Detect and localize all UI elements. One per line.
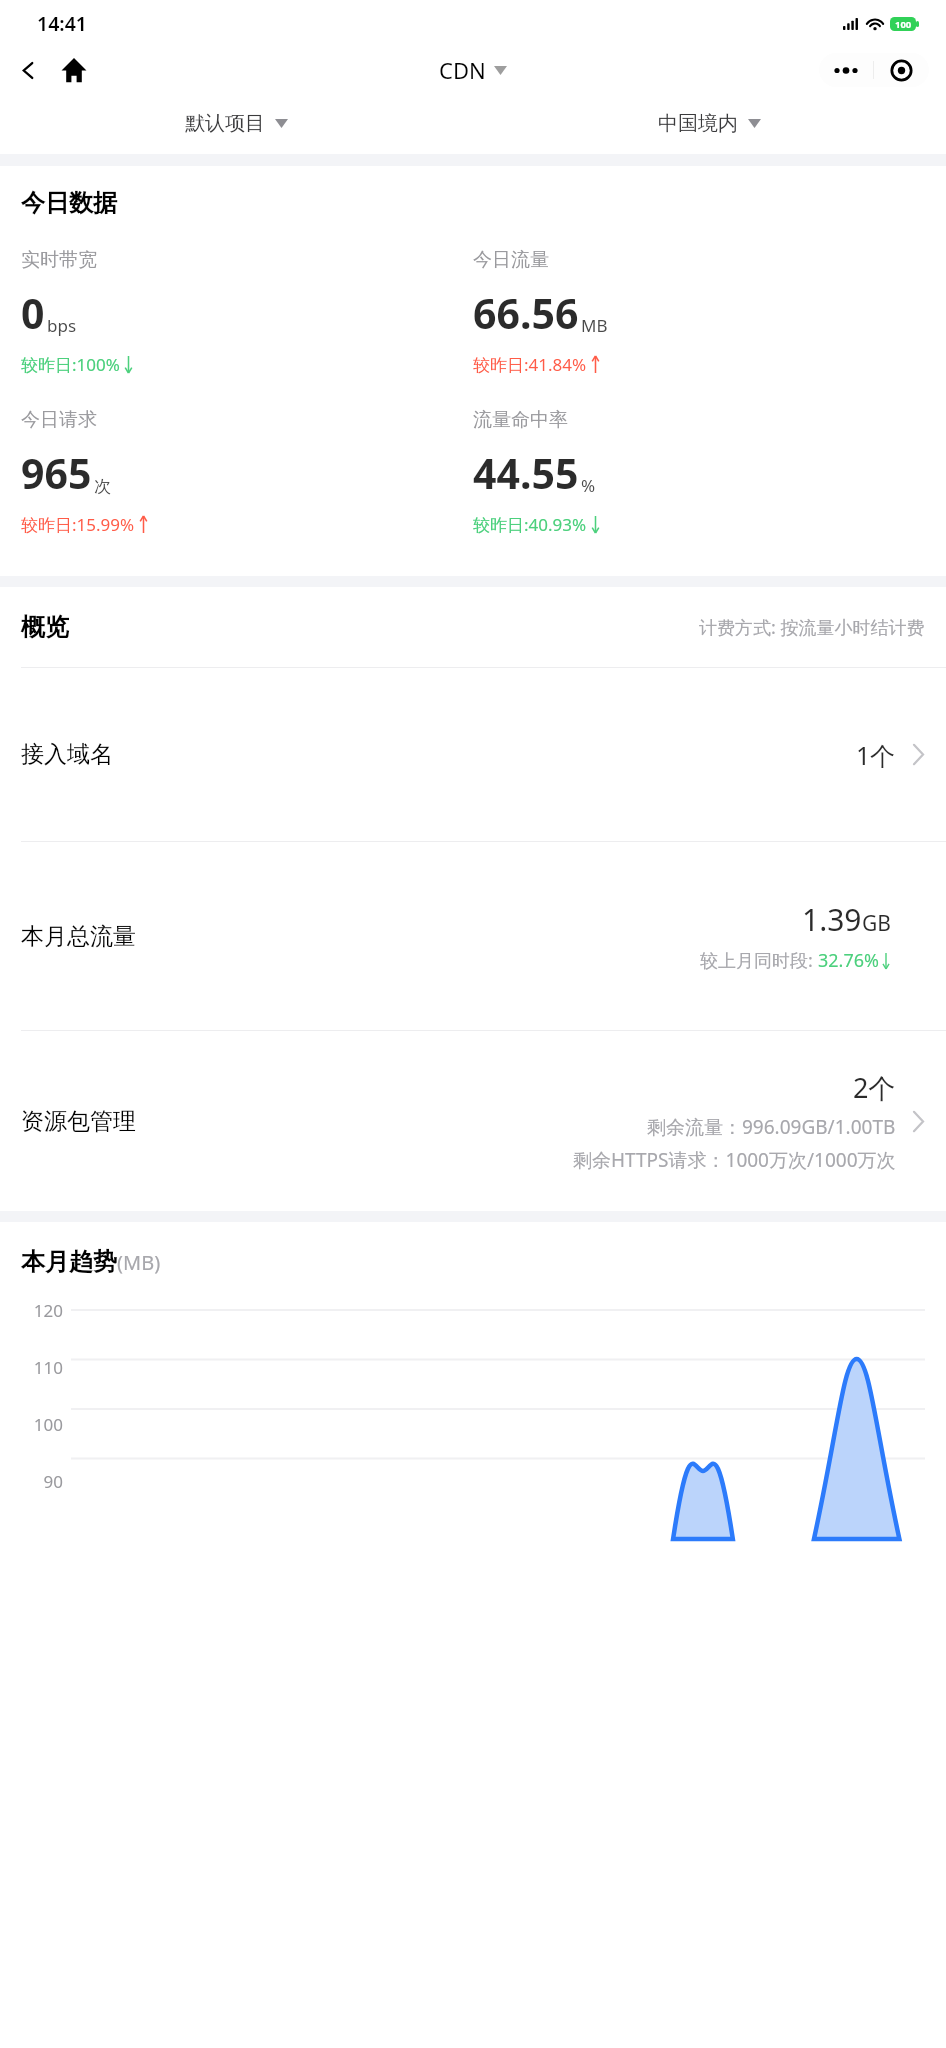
staticText: 120	[33, 1299, 63, 1322]
staticText: %	[581, 474, 596, 497]
staticText: 较昨日:100%	[21, 353, 120, 376]
staticText: 66.56	[473, 285, 579, 341]
staticText: 接入域名	[21, 740, 113, 769]
staticText: 本月趋势	[21, 1247, 117, 1277]
button[interactable]: Home	[52, 48, 96, 92]
button[interactable]: 本月总流量	[0, 842, 946, 1030]
staticText: 较上月同时段:	[700, 948, 818, 973]
staticText: 今日数据	[21, 188, 117, 218]
staticText: MB	[581, 314, 608, 337]
button[interactable]: Back	[8, 50, 48, 90]
staticText: 2个	[853, 1069, 896, 1106]
staticText: 默认项目	[185, 111, 265, 136]
staticText: 32.76%	[818, 948, 879, 973]
staticText: CDN	[439, 55, 486, 85]
button[interactable]: Close	[874, 53, 929, 87]
staticText: 110	[33, 1356, 63, 1379]
button[interactable]: More	[819, 53, 873, 87]
staticText: 较昨日:41.84%	[473, 353, 587, 376]
button[interactable]: 默认项目	[0, 92, 473, 154]
staticText: 流量命中率	[473, 408, 568, 432]
staticText: 1.39	[802, 899, 862, 940]
staticText: 100	[895, 18, 912, 31]
staticText: 中国境内	[658, 111, 738, 136]
staticText: 资源包管理	[21, 1107, 136, 1136]
staticText: GB	[862, 909, 891, 938]
staticText: 44.55	[473, 445, 579, 501]
button[interactable]: 中国境内	[473, 92, 946, 154]
staticText: 实时带宽	[21, 248, 97, 272]
staticText: 较昨日:40.93%	[473, 513, 587, 536]
staticText: 次	[94, 476, 111, 497]
staticText: 剩余流量：996.09GB/1.00TB	[647, 1114, 896, 1140]
staticText: 今日请求	[21, 408, 97, 432]
staticText: (MB)	[117, 1249, 161, 1276]
staticText: 概览	[21, 612, 69, 642]
staticText: 较昨日:15.99%	[21, 513, 135, 536]
staticText: 计费方式: 按流量小时结计费	[699, 615, 925, 640]
staticText: 14:41	[37, 10, 87, 37]
staticText: 剩余HTTPS请求：1000万次/1000万次	[573, 1147, 896, 1173]
button[interactable]: CDN	[439, 55, 507, 85]
staticText: 90	[43, 1470, 63, 1493]
staticText: 1个	[856, 738, 896, 772]
staticText: 0	[21, 285, 45, 341]
staticText: 今日流量	[473, 248, 549, 272]
staticText: 本月总流量	[21, 922, 136, 951]
staticText: 100	[33, 1413, 63, 1436]
button[interactable]: 资源包管理	[0, 1031, 946, 1211]
staticText: 965	[21, 445, 92, 501]
staticText: bps	[47, 314, 77, 337]
button[interactable]: 接入域名	[0, 668, 946, 841]
